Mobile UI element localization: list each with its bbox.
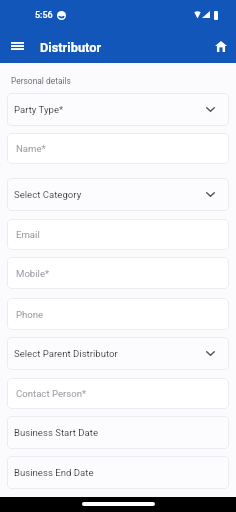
staticText: Party Type*	[14, 104, 64, 115]
staticText: Business Start Date	[14, 427, 99, 438]
staticText: Name*	[16, 143, 46, 154]
button[interactable]: Email	[7, 219, 229, 250]
staticText: Mobile*	[16, 268, 50, 279]
staticText: Distributor	[40, 40, 102, 55]
staticText: Select Category	[14, 189, 82, 200]
staticText: Personal details	[11, 76, 71, 86]
button[interactable]: Phone	[7, 298, 229, 330]
button[interactable]: Party Type*	[7, 93, 229, 126]
button[interactable]: Business Start Date	[7, 416, 229, 449]
staticText: Contact Person*	[16, 388, 87, 399]
button[interactable]: Open navigation menu	[6, 35, 28, 57]
button[interactable]: Select Parent Distributor	[7, 337, 229, 370]
staticText: Phone	[16, 309, 44, 320]
button[interactable]: Home	[210, 35, 232, 57]
staticText: 5:56	[35, 10, 53, 21]
button[interactable]: Contact Person*	[7, 378, 229, 409]
staticText: Email	[16, 229, 40, 240]
button[interactable]: Name*	[7, 133, 229, 164]
button[interactable]: Business End Date	[7, 456, 229, 489]
staticText: Select Parent Distributor	[14, 348, 118, 359]
button[interactable]: Mobile*	[7, 257, 229, 289]
staticText: Business End Date	[14, 467, 94, 478]
button[interactable]: Select Category	[7, 178, 229, 211]
